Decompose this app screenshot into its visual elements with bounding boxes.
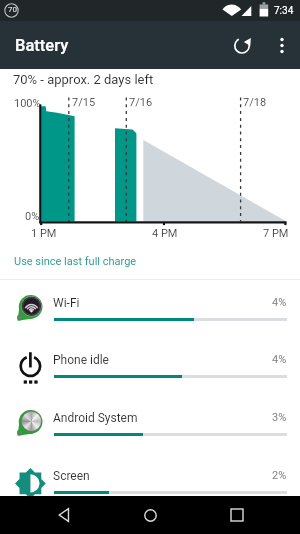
staticText: 70% - approx. 2 days left <box>13 72 154 87</box>
staticText: 0% <box>25 210 40 223</box>
staticText: Phone idle <box>53 353 109 367</box>
staticText: 7/16 <box>129 96 153 109</box>
button[interactable]: Use since last full charge <box>0 240 300 279</box>
button[interactable]: Recents <box>214 496 260 534</box>
staticText: Wi-Fi <box>53 296 80 310</box>
button[interactable]: Wi-Fi <box>0 280 300 337</box>
staticText: 7:34 <box>274 5 294 17</box>
button[interactable]: Refresh <box>220 23 264 67</box>
staticText: Battery <box>15 36 69 55</box>
staticText: 7/18 <box>243 96 267 109</box>
button[interactable]: Screen <box>0 453 300 510</box>
staticText: Screen <box>53 469 90 483</box>
staticText: 4 PM <box>152 227 178 240</box>
button[interactable]: Home <box>127 496 173 534</box>
staticText: Use since last full charge <box>14 255 137 268</box>
staticText: 2% <box>272 469 287 482</box>
staticText: 3% <box>272 411 287 424</box>
staticText: 1 PM <box>31 227 57 240</box>
staticText: Android System <box>53 411 138 425</box>
staticText: 4% <box>272 353 287 366</box>
staticText: 70 <box>8 5 17 14</box>
button[interactable]: More options <box>264 27 300 63</box>
staticText: 100% <box>14 97 41 110</box>
staticText: 4% <box>272 296 287 309</box>
staticText: 7/15 <box>72 96 96 109</box>
button[interactable]: Phone idle <box>0 337 300 394</box>
button[interactable]: Android System <box>0 395 300 452</box>
staticText: 7 PM <box>263 227 289 240</box>
button[interactable]: Back <box>41 496 87 534</box>
